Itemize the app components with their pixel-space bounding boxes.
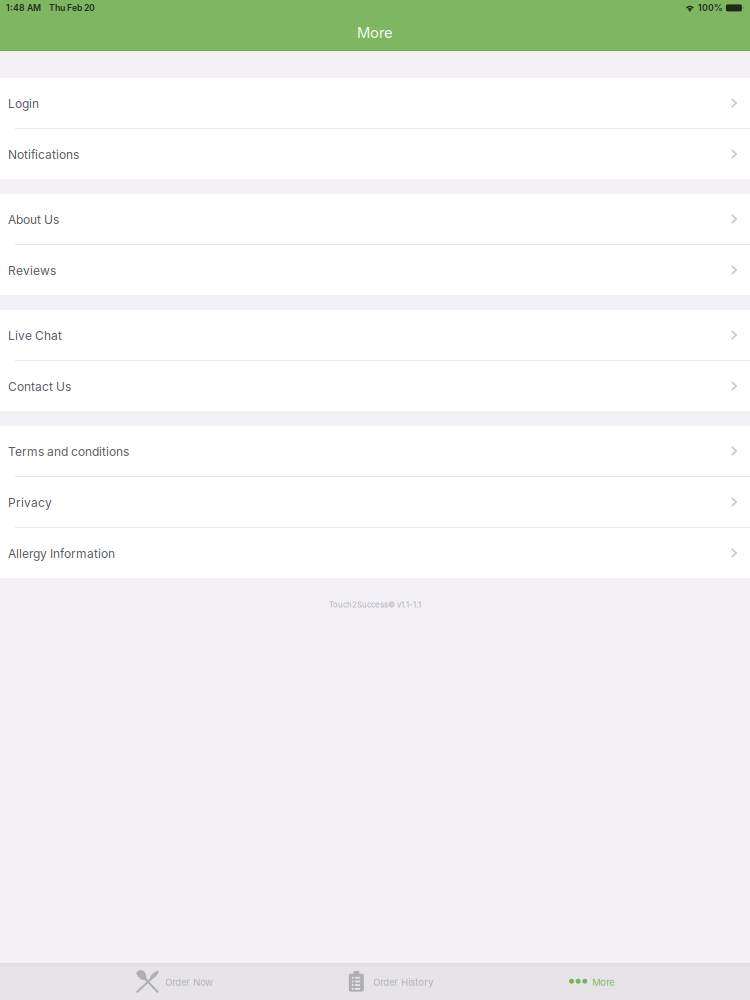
button[interactable]: More — [569, 962, 614, 1000]
button[interactable]: Order History — [349, 962, 433, 1000]
staticText: Touch2Success© v1.1-1.1 — [329, 600, 421, 609]
staticText: 1:48 AM — [6, 3, 41, 13]
staticText: Login — [8, 96, 39, 111]
staticText: 100% — [698, 3, 723, 13]
staticText: More — [357, 24, 393, 42]
button[interactable]: Reviews — [0, 245, 750, 295]
button[interactable]: Notifications — [0, 129, 750, 179]
button[interactable]: Login — [0, 78, 750, 128]
staticText: Live Chat — [8, 328, 62, 343]
staticText: About Us — [8, 212, 59, 227]
staticText: Thu Feb 20 — [49, 3, 95, 13]
button[interactable]: Order Now — [136, 962, 213, 1000]
staticText: Reviews — [8, 263, 56, 278]
button[interactable]: Live Chat — [0, 310, 750, 360]
staticText: Order Now — [165, 977, 213, 988]
staticText: Allergy Information — [8, 546, 115, 561]
staticText: Notifications — [8, 147, 79, 162]
staticText: Order History — [373, 977, 433, 988]
staticText: Privacy — [8, 495, 52, 510]
button[interactable]: About Us — [0, 194, 750, 244]
staticText: Contact Us — [8, 379, 71, 394]
button[interactable]: Terms and conditions — [0, 426, 750, 476]
button[interactable]: Contact Us — [0, 361, 750, 411]
button[interactable]: Privacy — [0, 477, 750, 527]
button[interactable]: Allergy Information — [0, 528, 750, 578]
staticText: Terms and conditions — [8, 444, 129, 459]
staticText: More — [592, 977, 614, 988]
